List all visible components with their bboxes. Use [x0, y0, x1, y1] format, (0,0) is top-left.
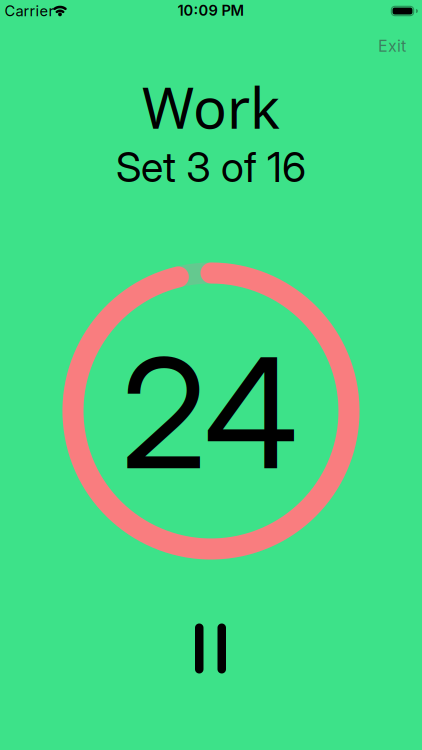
staticText: Exit	[378, 36, 406, 56]
staticText: 24	[121, 321, 298, 505]
staticText: Work	[142, 70, 280, 144]
button[interactable]: Pause	[183, 611, 238, 685]
staticText: Carrier	[4, 2, 54, 20]
button[interactable]: Exit	[378, 36, 406, 56]
staticText: 10:09 PM	[177, 2, 244, 19]
staticText: Set 3 of 16	[116, 142, 306, 192]
